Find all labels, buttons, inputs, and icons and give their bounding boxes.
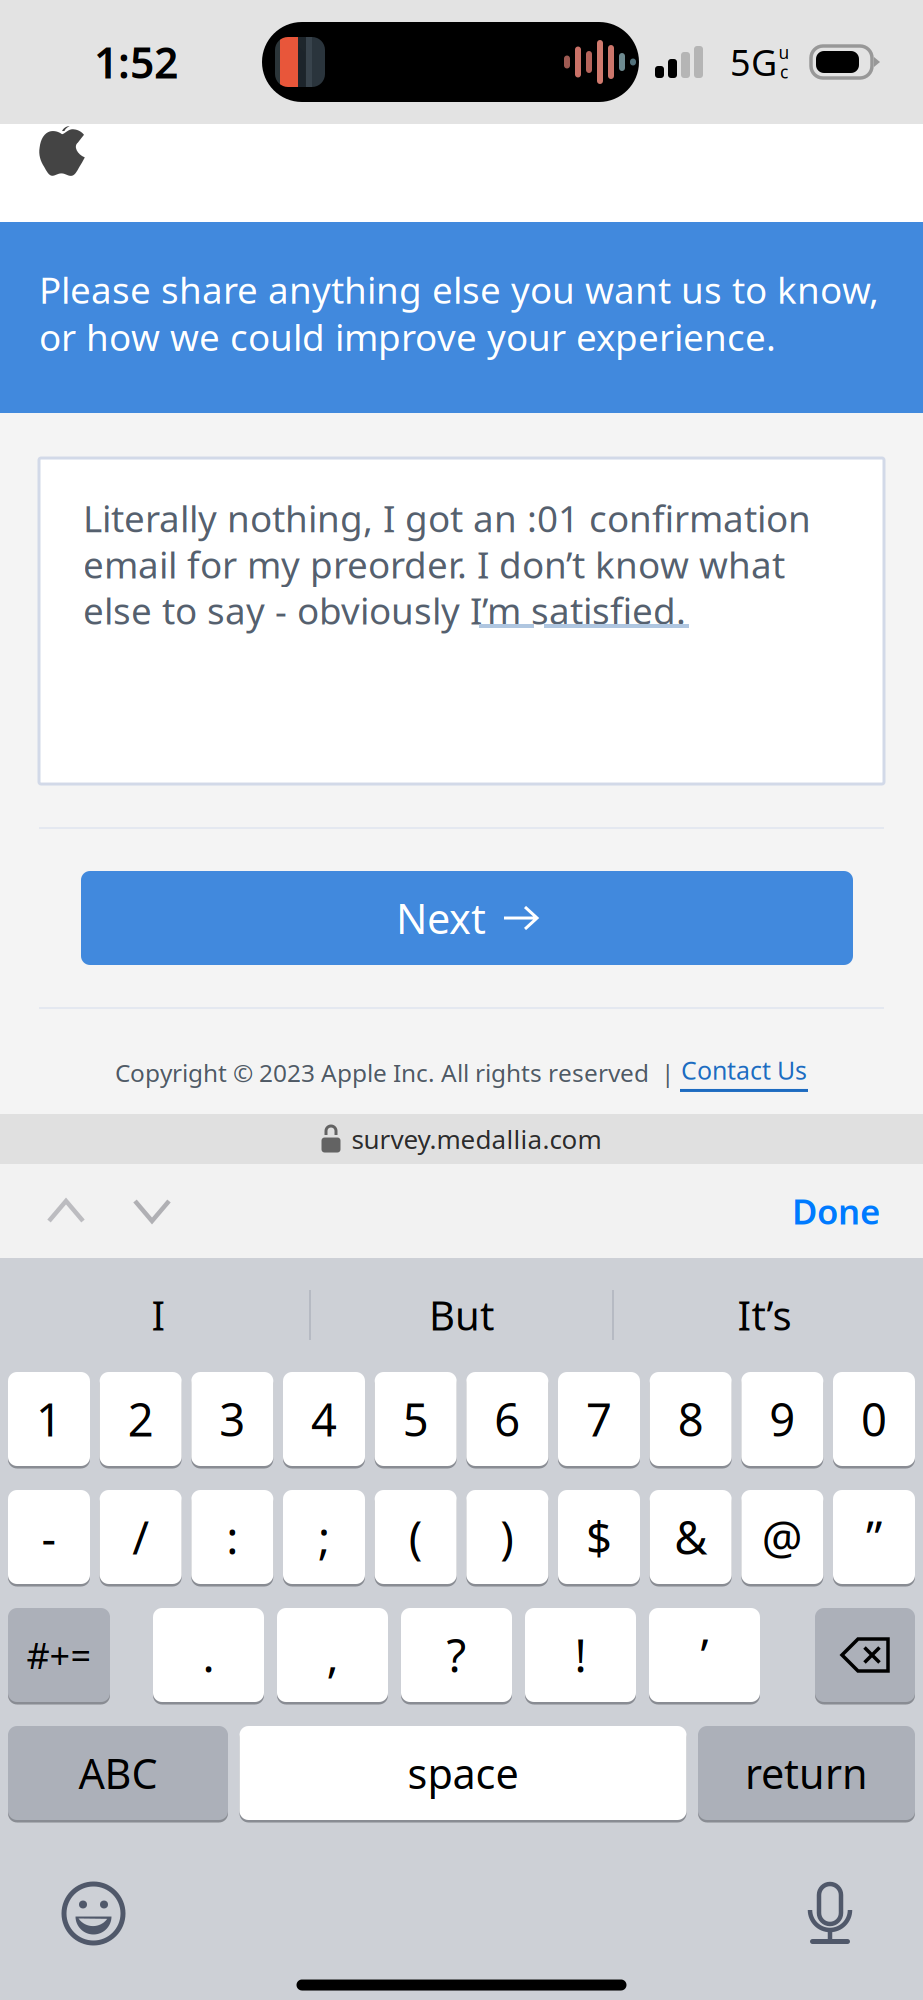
staticText: Literally nothing, I got an :01 confirma…	[83, 495, 811, 633]
button[interactable]: 7	[558, 1372, 640, 1466]
button[interactable]: ?	[401, 1608, 512, 1702]
button[interactable]: (	[375, 1490, 457, 1584]
staticText: It’s	[737, 1288, 791, 1341]
staticText: ’	[700, 1624, 708, 1686]
button[interactable]: /	[100, 1490, 182, 1584]
staticText: Done	[792, 1187, 880, 1235]
button[interactable]: .	[153, 1608, 264, 1702]
button[interactable]: ABC	[8, 1726, 228, 1820]
staticText: 8	[678, 1388, 704, 1450]
button[interactable]: Delete	[815, 1608, 915, 1702]
staticText: survey.medallia.com	[351, 1121, 601, 1157]
button[interactable]: -	[8, 1490, 90, 1584]
button[interactable]: 0	[833, 1372, 915, 1466]
button[interactable]: ;	[283, 1490, 365, 1584]
staticText: /	[132, 1506, 149, 1568]
button[interactable]: 4	[283, 1372, 365, 1466]
button[interactable]: ,	[277, 1608, 388, 1702]
staticText: c	[780, 60, 788, 84]
button[interactable]: !	[525, 1608, 636, 1702]
button[interactable]: 6	[466, 1372, 548, 1466]
button[interactable]: ”	[833, 1490, 915, 1584]
staticText: :	[226, 1506, 238, 1568]
button[interactable]: Next	[0, 829, 923, 965]
button[interactable]: 2	[100, 1372, 182, 1466]
staticText: 1:52	[94, 34, 178, 90]
staticText: 2	[128, 1388, 154, 1450]
staticText: 7	[586, 1388, 612, 1450]
staticText: Please share anything else you want us t…	[39, 266, 879, 360]
staticText: ;	[318, 1506, 330, 1568]
staticText: 3	[219, 1388, 245, 1450]
button[interactable]: #+=	[8, 1608, 110, 1702]
staticText: 5G	[730, 37, 777, 86]
staticText: But	[429, 1288, 494, 1341]
button[interactable]: Emoji	[42, 1820, 145, 1950]
staticText: -	[41, 1506, 56, 1568]
staticText: &	[674, 1506, 707, 1568]
staticText: return	[745, 1745, 868, 1801]
button[interactable]: )	[466, 1490, 548, 1584]
staticText: u	[778, 40, 789, 64]
staticText: ,	[326, 1624, 338, 1686]
button[interactable]: It’s	[614, 1259, 915, 1371]
button[interactable]: 8	[650, 1372, 732, 1466]
staticText: .	[202, 1624, 214, 1686]
staticText: 0	[861, 1388, 887, 1450]
button[interactable]: ’	[649, 1608, 760, 1702]
button[interactable]: return	[698, 1726, 915, 1820]
staticText: space	[407, 1745, 518, 1801]
staticText: !	[574, 1624, 586, 1686]
button[interactable]: Next field	[109, 1177, 195, 1245]
button[interactable]: space	[239, 1726, 686, 1820]
staticText: I	[151, 1288, 165, 1341]
button[interactable]: I	[8, 1259, 309, 1371]
staticText: )	[500, 1506, 514, 1568]
button[interactable]: But	[311, 1259, 612, 1371]
staticText: ABC	[78, 1745, 157, 1801]
button[interactable]: 9	[741, 1372, 823, 1466]
button[interactable]: 5	[375, 1372, 457, 1466]
staticText: 5	[403, 1388, 429, 1450]
button[interactable]: Done	[762, 1167, 923, 1255]
button[interactable]: Dictation	[789, 1826, 871, 1944]
staticText: 1	[36, 1388, 62, 1450]
button[interactable]: Contact Us	[680, 1053, 808, 1092]
button[interactable]: $	[558, 1490, 640, 1584]
button[interactable]: :	[191, 1490, 273, 1584]
staticText: Contact Us	[681, 1053, 807, 1087]
staticText: 9	[769, 1388, 795, 1450]
staticText: ?	[446, 1624, 466, 1686]
button[interactable]: 1	[8, 1372, 90, 1466]
staticText: (	[409, 1506, 423, 1568]
button[interactable]: @	[741, 1490, 823, 1584]
button[interactable]: &	[650, 1490, 732, 1584]
staticText: Next	[396, 891, 486, 945]
button[interactable]: 3	[191, 1372, 273, 1466]
staticText: Copyright © 2023 Apple Inc. All rights r…	[115, 1056, 680, 1089]
staticText: 6	[494, 1388, 520, 1450]
staticText: $	[586, 1506, 612, 1568]
staticText: #+=	[26, 1630, 91, 1679]
staticText: ”	[866, 1506, 882, 1568]
staticText: @	[762, 1506, 803, 1568]
staticText: 4	[311, 1388, 337, 1450]
button[interactable]: Previous field	[0, 1177, 109, 1245]
